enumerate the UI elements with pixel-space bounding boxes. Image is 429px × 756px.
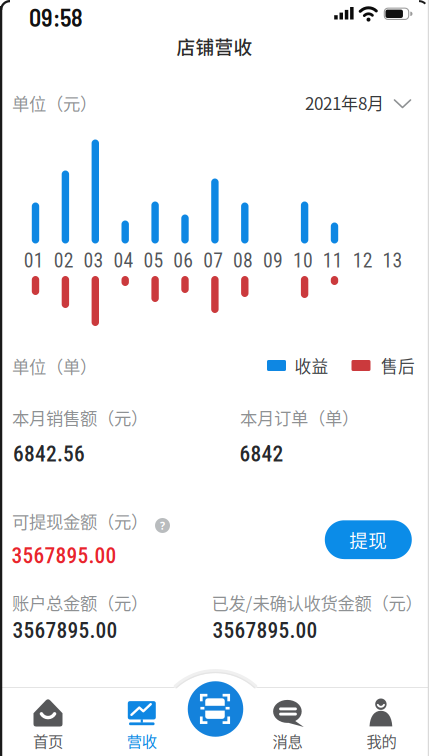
- staticText: 提现: [349, 526, 387, 553]
- staticText: 03: [84, 249, 104, 272]
- staticText: 10: [293, 249, 313, 272]
- staticText: 我的: [366, 729, 396, 752]
- staticText: 13: [383, 249, 403, 272]
- staticText: 6842: [239, 442, 283, 467]
- staticText: 08: [233, 249, 253, 272]
- staticText: 单位（元）: [12, 90, 97, 116]
- staticText: 3567895.00: [11, 543, 116, 569]
- staticText: 05: [143, 249, 163, 272]
- staticText: 07: [203, 249, 223, 272]
- staticText: 09: [263, 249, 283, 272]
- staticText: 6842.56: [13, 442, 85, 467]
- staticText: 售后: [381, 353, 415, 377]
- staticText: 3567895.00: [12, 618, 117, 643]
- staticText: 可提现金额（元）: [12, 508, 148, 534]
- staticText: ?: [160, 518, 165, 533]
- staticText: 09:58: [29, 3, 83, 32]
- staticText: 06: [173, 249, 193, 272]
- staticText: 单位（单）: [12, 353, 97, 379]
- staticText: 01: [24, 249, 44, 272]
- staticText: 2021年8月: [305, 90, 384, 115]
- staticText: 账户总金额（元）: [12, 590, 148, 615]
- staticText: 已发/未确认收货金额（元）: [211, 590, 422, 615]
- staticText: 首页: [33, 729, 63, 752]
- staticText: 本月销售额（元）: [12, 405, 148, 430]
- staticText: 收益: [294, 353, 328, 377]
- staticText: 04: [113, 249, 133, 272]
- staticText: 02: [54, 249, 74, 272]
- staticText: 店铺营收: [176, 33, 252, 60]
- staticText: 本月订单（单）: [240, 405, 359, 430]
- staticText: 3567895.00: [212, 618, 317, 643]
- staticText: 营收: [127, 729, 157, 752]
- staticText: 11: [323, 249, 343, 272]
- staticText: 12: [353, 249, 373, 272]
- staticText: 消息: [272, 729, 302, 752]
